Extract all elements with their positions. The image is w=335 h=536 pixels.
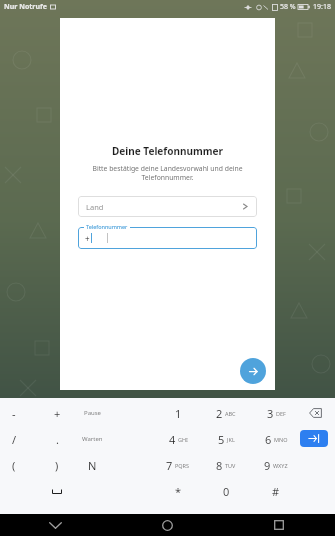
button[interactable]: ( (0, 454, 33, 476)
staticText: ) (55, 458, 59, 473)
other: Leerzeichen (52, 489, 62, 494)
staticText: Pause (84, 409, 101, 417)
button[interactable]: 3 (252, 402, 300, 424)
button[interactable]: Startbildschirm (111, 514, 223, 536)
button[interactable]: N (73, 454, 111, 476)
staticText: / (12, 432, 17, 447)
staticText: Nur Notrufe (4, 2, 47, 12)
button[interactable]: 8 (202, 454, 250, 476)
button[interactable]: * (154, 480, 202, 502)
staticText: 9 (264, 458, 271, 473)
button[interactable]: 2 (202, 402, 250, 424)
button[interactable]: 4 (154, 428, 202, 450)
button[interactable]: 5 (202, 428, 250, 450)
button[interactable]: ) (38, 454, 76, 476)
staticText: 6 (265, 432, 272, 447)
staticText: 19:18 (313, 2, 331, 12)
staticText: - (12, 406, 16, 421)
staticText: 8 (216, 458, 223, 473)
button[interactable]: 9 (252, 454, 300, 476)
staticText: Deine Telefonnummer (112, 144, 223, 158)
button[interactable]: Pause (73, 402, 111, 424)
staticText: * (175, 484, 182, 499)
staticText: Warten (82, 435, 103, 443)
staticText: # (272, 484, 280, 499)
button[interactable]: 7 (154, 454, 202, 476)
button[interactable]: - (0, 402, 33, 424)
staticText: Bitte bestätige deine Landesvorwahl und … (90, 164, 245, 182)
staticText: ABC (225, 410, 236, 417)
staticText: + (85, 233, 90, 244)
button[interactable]: Zurück (0, 514, 111, 536)
staticText: 58 % (280, 2, 296, 12)
button[interactable]: 1 (154, 402, 202, 424)
staticText: + (54, 406, 61, 421)
staticText: 2 (216, 406, 223, 421)
staticText: 5 (218, 432, 225, 447)
button[interactable]: Weiter (240, 358, 266, 384)
button[interactable]: Löschen (303, 402, 327, 424)
button[interactable]: Land (78, 196, 257, 217)
staticText: 1 (175, 406, 182, 421)
button[interactable]: / (0, 428, 33, 450)
button[interactable]: Leerzeichen (38, 480, 76, 502)
staticText: ( (12, 458, 16, 473)
staticText: DEF (276, 410, 286, 417)
staticText: PQRS (175, 462, 190, 469)
button[interactable]: 0 (202, 480, 250, 502)
button[interactable]: + (38, 402, 76, 424)
button[interactable]: Übersicht (223, 514, 335, 536)
staticText: GHI (178, 436, 188, 443)
button[interactable] (78, 227, 257, 249)
button[interactable]: # (252, 480, 300, 502)
staticText: . (56, 432, 59, 447)
staticText: WXYZ (273, 462, 288, 469)
button[interactable]: . (38, 428, 76, 450)
staticText: Land (86, 202, 104, 212)
button[interactable]: Warten (73, 428, 111, 450)
staticText: Telefonnummer (86, 223, 128, 230)
button[interactable]: Weiter (300, 430, 328, 447)
staticText: TUV (225, 462, 236, 469)
staticText: N (88, 458, 97, 473)
staticText: 7 (166, 458, 173, 473)
staticText: 4 (169, 432, 176, 447)
staticText: 0 (223, 484, 230, 499)
button[interactable]: 6 (252, 428, 300, 450)
staticText: MNO (274, 436, 288, 443)
staticText: 3 (267, 406, 274, 421)
staticText: JKL (227, 436, 235, 443)
